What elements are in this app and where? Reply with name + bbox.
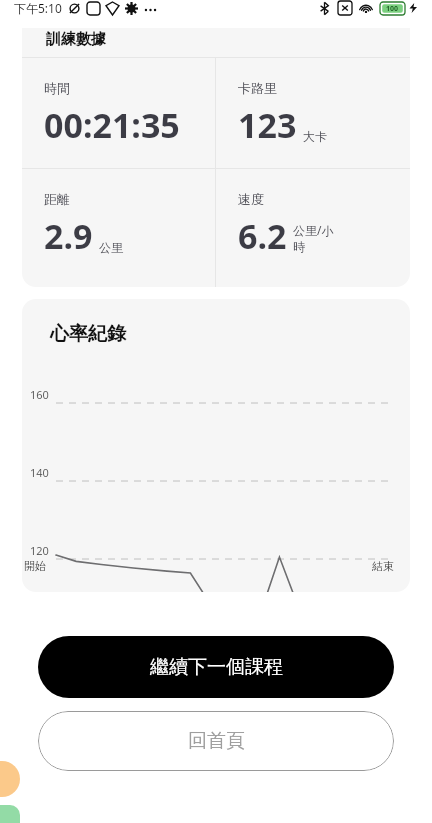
staticText: 速度: [238, 191, 264, 207]
staticText: 心率紀錄: [50, 322, 126, 346]
staticText: 訓練數據: [46, 30, 106, 49]
button[interactable]: 卡路里: [216, 58, 410, 176]
staticText: 公里/小時: [293, 222, 345, 255]
button[interactable]: 距離: [22, 169, 215, 287]
staticText: 140: [30, 465, 49, 480]
staticText: 123: [238, 102, 297, 148]
staticText: 120: [30, 543, 49, 558]
button[interactable]: 繼續下一個課程: [38, 636, 394, 698]
staticText: 大卡: [303, 129, 327, 144]
staticText: 100: [386, 4, 399, 14]
button[interactable]: 時間: [22, 58, 215, 176]
staticText: 時間: [44, 80, 70, 96]
staticText: 卡路里: [238, 80, 277, 96]
button[interactable]: 速度: [216, 169, 410, 287]
staticText: 160: [30, 387, 49, 402]
button[interactable]: 回首頁: [38, 711, 394, 771]
staticText: 公里: [99, 240, 123, 255]
staticText: 開始: [24, 559, 46, 573]
staticText: 2.9: [44, 213, 93, 259]
staticText: 00:21:35: [44, 102, 180, 148]
staticText: 6.2: [238, 213, 287, 259]
staticText: 距離: [44, 191, 70, 207]
staticText: 結束: [372, 559, 394, 573]
staticText: 繼續下一個課程: [150, 655, 283, 679]
staticText: 下午5:10: [14, 0, 62, 16]
staticText: 回首頁: [188, 729, 245, 753]
